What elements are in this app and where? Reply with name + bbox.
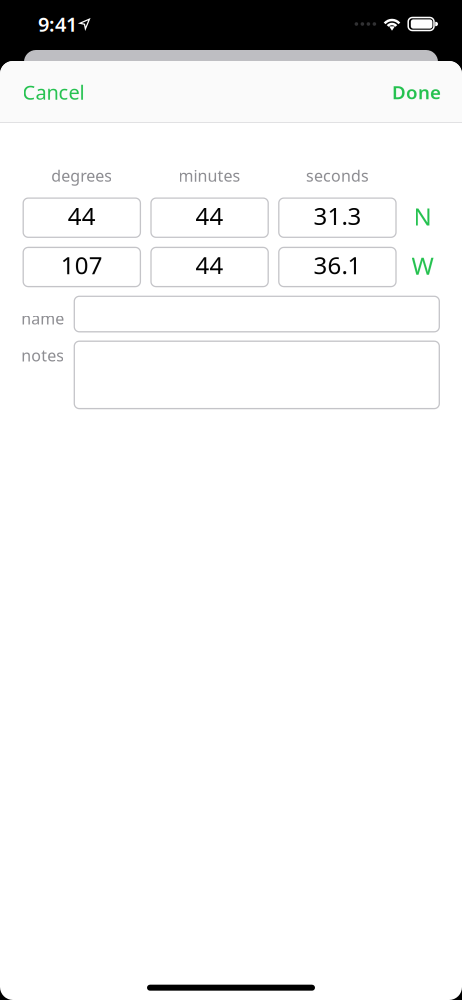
staticText: Done xyxy=(392,80,441,104)
staticText: name xyxy=(21,308,64,329)
button[interactable]: Cancel xyxy=(16,67,90,117)
staticText: 44 xyxy=(196,249,224,281)
staticText: notes xyxy=(21,345,64,366)
staticText: W xyxy=(411,250,433,281)
staticText: 31.3 xyxy=(313,200,361,232)
staticText: 36.1 xyxy=(313,249,361,281)
staticText: 107 xyxy=(61,249,103,281)
staticText: degrees xyxy=(51,165,112,186)
staticText: 44 xyxy=(196,200,224,232)
button[interactable]: Done xyxy=(386,68,447,116)
staticText: Cancel xyxy=(22,79,84,105)
staticText: 9:41 xyxy=(38,11,77,37)
staticText: seconds xyxy=(306,165,369,186)
staticText: N xyxy=(413,200,431,232)
staticText: 44 xyxy=(68,200,96,232)
staticText: minutes xyxy=(179,165,241,186)
